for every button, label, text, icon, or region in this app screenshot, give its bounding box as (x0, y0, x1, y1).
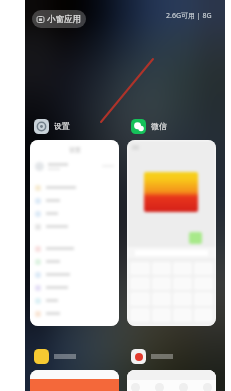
button[interactable]: 微信 (127, 117, 167, 135)
button[interactable] (127, 347, 173, 365)
button[interactable]: 设置 (30, 140, 119, 326)
other: 设置 (34, 119, 49, 134)
staticText: 设置 (54, 121, 70, 131)
staticText: 设置 (69, 146, 81, 154)
other: 微信 (131, 119, 146, 134)
button[interactable]: 小窗应用 (32, 10, 86, 28)
button[interactable] (30, 370, 119, 391)
button[interactable] (30, 347, 76, 365)
button[interactable] (127, 140, 216, 326)
button[interactable] (127, 370, 216, 391)
staticText: 小窗应用 (47, 14, 81, 25)
button[interactable]: 设置 (30, 117, 70, 135)
staticText: 2.6G可用 | 8G (166, 11, 212, 21)
staticText: 微信 (151, 121, 167, 131)
